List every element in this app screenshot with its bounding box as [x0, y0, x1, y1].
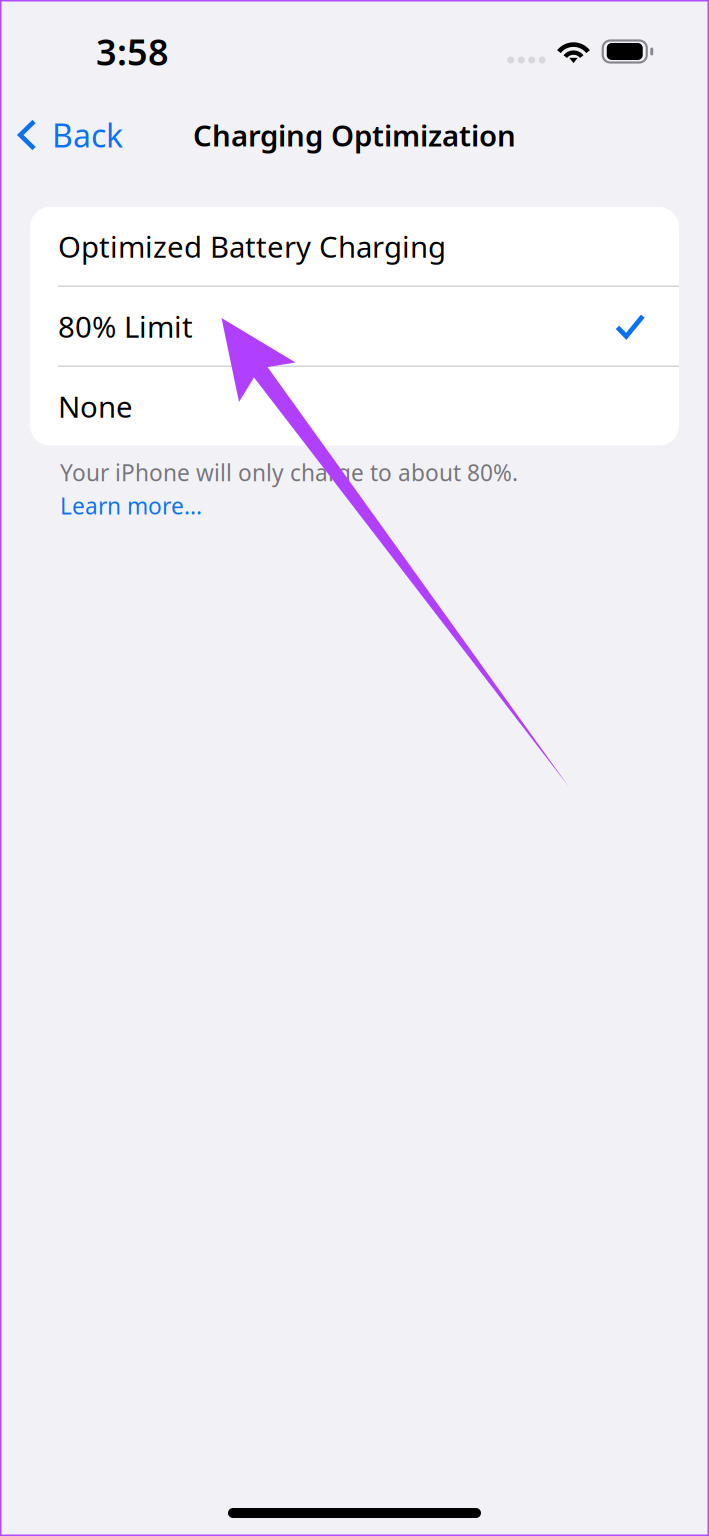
- staticText: 3:58: [96, 28, 169, 75]
- staticText: Learn more...: [60, 491, 202, 521]
- staticText: Your iPhone will only charge to about 80…: [60, 457, 518, 488]
- staticText: Back: [52, 114, 123, 156]
- button[interactable]: 80% Limit: [30, 287, 679, 365]
- staticText: 80% Limit: [58, 307, 193, 346]
- button[interactable]: Back: [0, 106, 123, 164]
- button[interactable]: None: [30, 367, 679, 445]
- button[interactable]: Optimized Battery Charging: [30, 207, 679, 285]
- staticText: Optimized Battery Charging: [58, 227, 446, 266]
- staticText: None: [58, 387, 133, 426]
- button[interactable]: Learn more...: [60, 491, 202, 521]
- staticText: Charging Optimization: [193, 115, 516, 154]
